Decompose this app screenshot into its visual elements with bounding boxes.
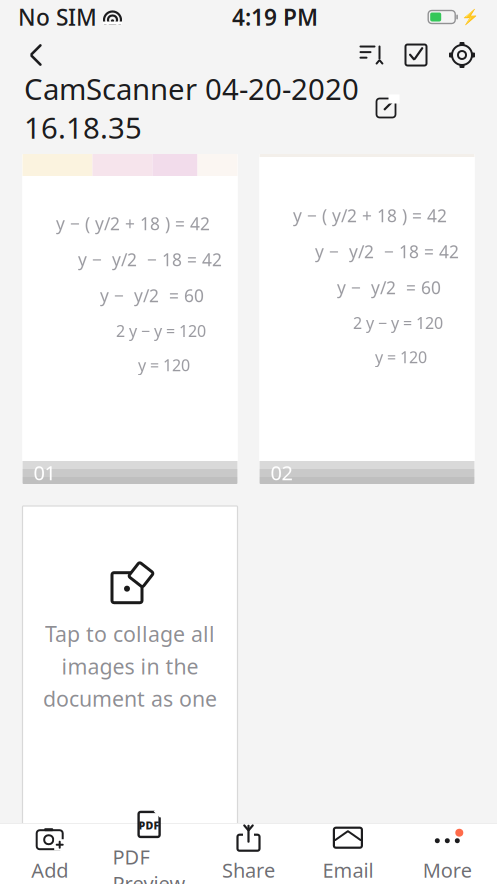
staticText: y − ( y/2 + 18 ) = 42 xyxy=(56,212,210,235)
button[interactable]: Sort xyxy=(347,33,393,77)
staticText: No SIM xyxy=(18,2,97,32)
staticText: y − y/2 = 60 xyxy=(337,276,441,299)
staticText: ⚡ xyxy=(461,9,479,25)
staticText: y − ( y/2 + 18 ) = 42 xyxy=(293,204,447,227)
button[interactable]: PDF Preview xyxy=(99,824,199,884)
button[interactable]: Share xyxy=(199,824,298,884)
staticText: y = 120 xyxy=(138,354,190,375)
staticText: 2 y − y = 120 xyxy=(116,320,206,341)
staticText: document as one xyxy=(43,684,217,713)
staticText: y = 120 xyxy=(375,346,427,367)
staticText: 02 xyxy=(270,459,292,486)
staticText: y − y/2 − 18 = 42 xyxy=(78,248,222,271)
button[interactable]: Select xyxy=(393,33,439,77)
staticText: 2 y − y = 120 xyxy=(353,312,443,333)
button[interactable]: Add xyxy=(0,824,99,884)
button[interactable]: Tap to collage all images in the documen… xyxy=(22,506,237,824)
staticText: Email xyxy=(322,857,373,883)
staticText: CamScanner 04-20-2020 16.18.35 xyxy=(24,69,359,147)
staticText: y − y/2 − 18 = 42 xyxy=(315,240,459,263)
staticText: Share xyxy=(222,857,275,883)
button[interactable]: Settings xyxy=(439,33,485,77)
button[interactable]: Email xyxy=(298,824,398,884)
button[interactable]: Back xyxy=(12,33,60,77)
button[interactable]: More xyxy=(398,824,497,884)
staticText: y − y/2 = 60 xyxy=(100,284,204,307)
staticText: 01 xyxy=(33,459,55,486)
staticText: images in the xyxy=(61,652,198,680)
staticText: Add xyxy=(31,857,68,883)
staticText: PDF Preview xyxy=(113,843,186,884)
button[interactable]: Rename document xyxy=(371,93,401,123)
staticText: PDF xyxy=(139,818,160,833)
button[interactable]: Page 01 xyxy=(22,154,237,484)
staticText: More xyxy=(423,857,472,883)
staticText: Tap to collage all xyxy=(45,620,215,648)
staticText: 4:19 PM xyxy=(232,2,318,32)
button[interactable]: Page 02 xyxy=(259,154,474,484)
